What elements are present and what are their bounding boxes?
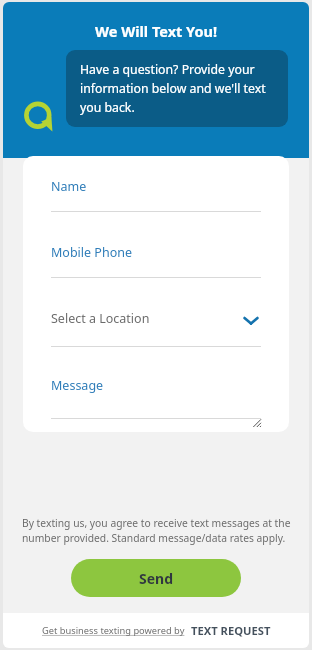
staticText: By texting us, you agree to receive text… — [22, 516, 291, 545]
staticText: Get business texting powered by — [42, 624, 185, 637]
button[interactable]: Select a Location — [51, 278, 261, 347]
button[interactable]: Mobile Phone — [51, 212, 261, 278]
button[interactable]: Message — [51, 347, 261, 429]
staticText: TEXT REQUEST — [191, 623, 271, 638]
button[interactable]: Get business texting powered by — [3, 613, 309, 648]
staticText: Name — [51, 178, 87, 195]
button[interactable]: Send — [71, 559, 241, 597]
staticText: Select a Location — [51, 310, 150, 327]
staticText: Have a question? Provide your informatio… — [80, 61, 274, 116]
staticText: Mobile Phone — [51, 244, 132, 261]
button[interactable]: Name — [51, 156, 261, 212]
staticText: Send — [139, 569, 174, 588]
staticText: Message — [51, 377, 104, 394]
other: Open location list — [241, 310, 261, 330]
staticText: We Will Text You! — [3, 21, 309, 41]
